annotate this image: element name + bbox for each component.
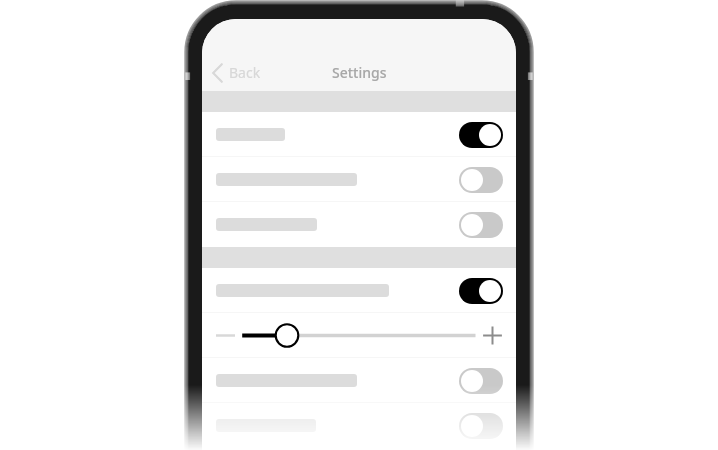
button[interactable]: Switch on (459, 278, 503, 304)
button[interactable]: Back (206, 60, 267, 86)
button[interactable]: Switch on (202, 268, 516, 313)
button[interactable]: Switch off (202, 157, 516, 202)
staticText: Settings (332, 63, 387, 82)
button[interactable]: Switch off (459, 368, 503, 394)
button[interactable]: Switch on (459, 122, 503, 148)
button[interactable]: Switch off (202, 403, 516, 448)
button[interactable]: Switch off (459, 167, 503, 193)
button[interactable]: Switch on (202, 112, 516, 157)
button[interactable]: Level slider (202, 313, 516, 358)
button[interactable]: Switch off (202, 358, 516, 403)
button[interactable]: Switch off (459, 413, 503, 439)
button[interactable]: Switch off (202, 202, 516, 247)
button[interactable]: Switch off (459, 212, 503, 238)
staticText: Back (229, 63, 261, 82)
